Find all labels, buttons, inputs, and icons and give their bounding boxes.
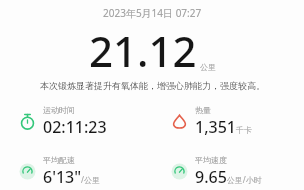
staticText: 公里 — [200, 62, 216, 72]
button[interactable]: 运动时间 — [0, 103, 152, 140]
button[interactable]: 平均配速 — [0, 153, 152, 190]
other: 热量 — [171, 113, 188, 130]
other: 平均速度 — [171, 163, 188, 180]
staticText: 平均速度 — [195, 155, 227, 165]
other: 平均配速 — [19, 163, 36, 180]
staticText: 本次锻炼显著提升有氧体能，增强心肺能力，强度较高。 — [40, 80, 265, 91]
staticText: 运动时间 — [43, 105, 75, 115]
staticText: 6'13"/公里 — [43, 166, 101, 188]
button[interactable]: 热量 — [152, 103, 304, 140]
button[interactable]: 平均速度 — [152, 153, 304, 190]
staticText: 1,351千卡 — [195, 116, 252, 138]
other: 运动时间 — [19, 113, 36, 130]
staticText: 热量 — [195, 105, 211, 115]
staticText: 平均配速 — [43, 155, 75, 165]
staticText: 9.65公里/小时 — [195, 166, 262, 188]
staticText: 02:11:23 — [43, 116, 107, 138]
staticText: 2023年5月14日 07:27 — [103, 6, 202, 20]
staticText: 21.12 — [89, 22, 197, 79]
